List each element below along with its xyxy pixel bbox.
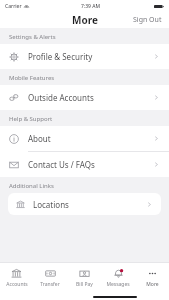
staticText: Transfer: [40, 281, 60, 288]
staticText: Profile & Security: [28, 51, 93, 62]
button[interactable]: Accounts: [0, 263, 33, 293]
button[interactable]: Bill Pay: [67, 263, 101, 293]
button[interactable]: Sign Out: [126, 12, 169, 28]
staticText: Bill Pay: [76, 281, 93, 288]
staticText: Additional Links: [9, 182, 54, 190]
button[interactable]: Profile & Security: [0, 44, 169, 69]
staticText: Sign Out: [133, 15, 162, 25]
staticText: Accounts: [6, 281, 28, 288]
button[interactable]: Contact Us / FAQs: [0, 152, 169, 177]
button[interactable]: Transfer: [33, 263, 67, 293]
button[interactable]: Outside Accounts: [0, 85, 169, 110]
staticText: Mobile Features: [9, 74, 55, 82]
staticText: About: [28, 133, 51, 144]
button[interactable]: More: [135, 263, 169, 293]
staticText: 7:39 AM: [81, 3, 101, 10]
button[interactable]: About: [0, 126, 169, 151]
button[interactable]: Locations: [8, 193, 161, 215]
staticText: Contact Us / FAQs: [28, 159, 95, 170]
staticText: Help & Support: [9, 115, 53, 123]
staticText: Outside Accounts: [28, 92, 94, 103]
staticText: Locations: [33, 199, 69, 210]
button[interactable]: Messages: [101, 263, 135, 293]
staticText: Carrier: [5, 3, 22, 10]
staticText: More: [72, 13, 98, 27]
staticText: More: [146, 281, 159, 288]
staticText: Messages: [106, 281, 130, 288]
staticText: Settings & Alerts: [9, 33, 56, 41]
